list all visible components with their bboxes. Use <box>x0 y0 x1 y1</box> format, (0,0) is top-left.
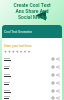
button[interactable]: Share <box>2 63 62 71</box>
button[interactable]: Share <box>2 95 62 100</box>
other: Share <box>56 65 60 69</box>
button[interactable]: Share <box>2 55 62 63</box>
other: Share <box>56 73 60 77</box>
button[interactable]: Share <box>2 71 62 79</box>
staticText: Enter your text here <box>4 44 32 48</box>
staticText: Create Cool Text <box>13 2 51 8</box>
staticText: Social Media <box>18 14 47 20</box>
button[interactable]: Share <box>2 87 62 95</box>
staticText: ✦ ✦ ✦ ✦ ✦ ✦ ✦ <box>4 50 31 54</box>
other: Share <box>56 96 60 100</box>
button[interactable]: Share <box>2 79 62 87</box>
other: Share <box>56 81 60 85</box>
other: Share <box>56 57 60 61</box>
staticText: Cool Text Generator <box>4 30 33 34</box>
staticText: Ans Share And <box>15 8 49 14</box>
other: Share <box>56 89 60 93</box>
